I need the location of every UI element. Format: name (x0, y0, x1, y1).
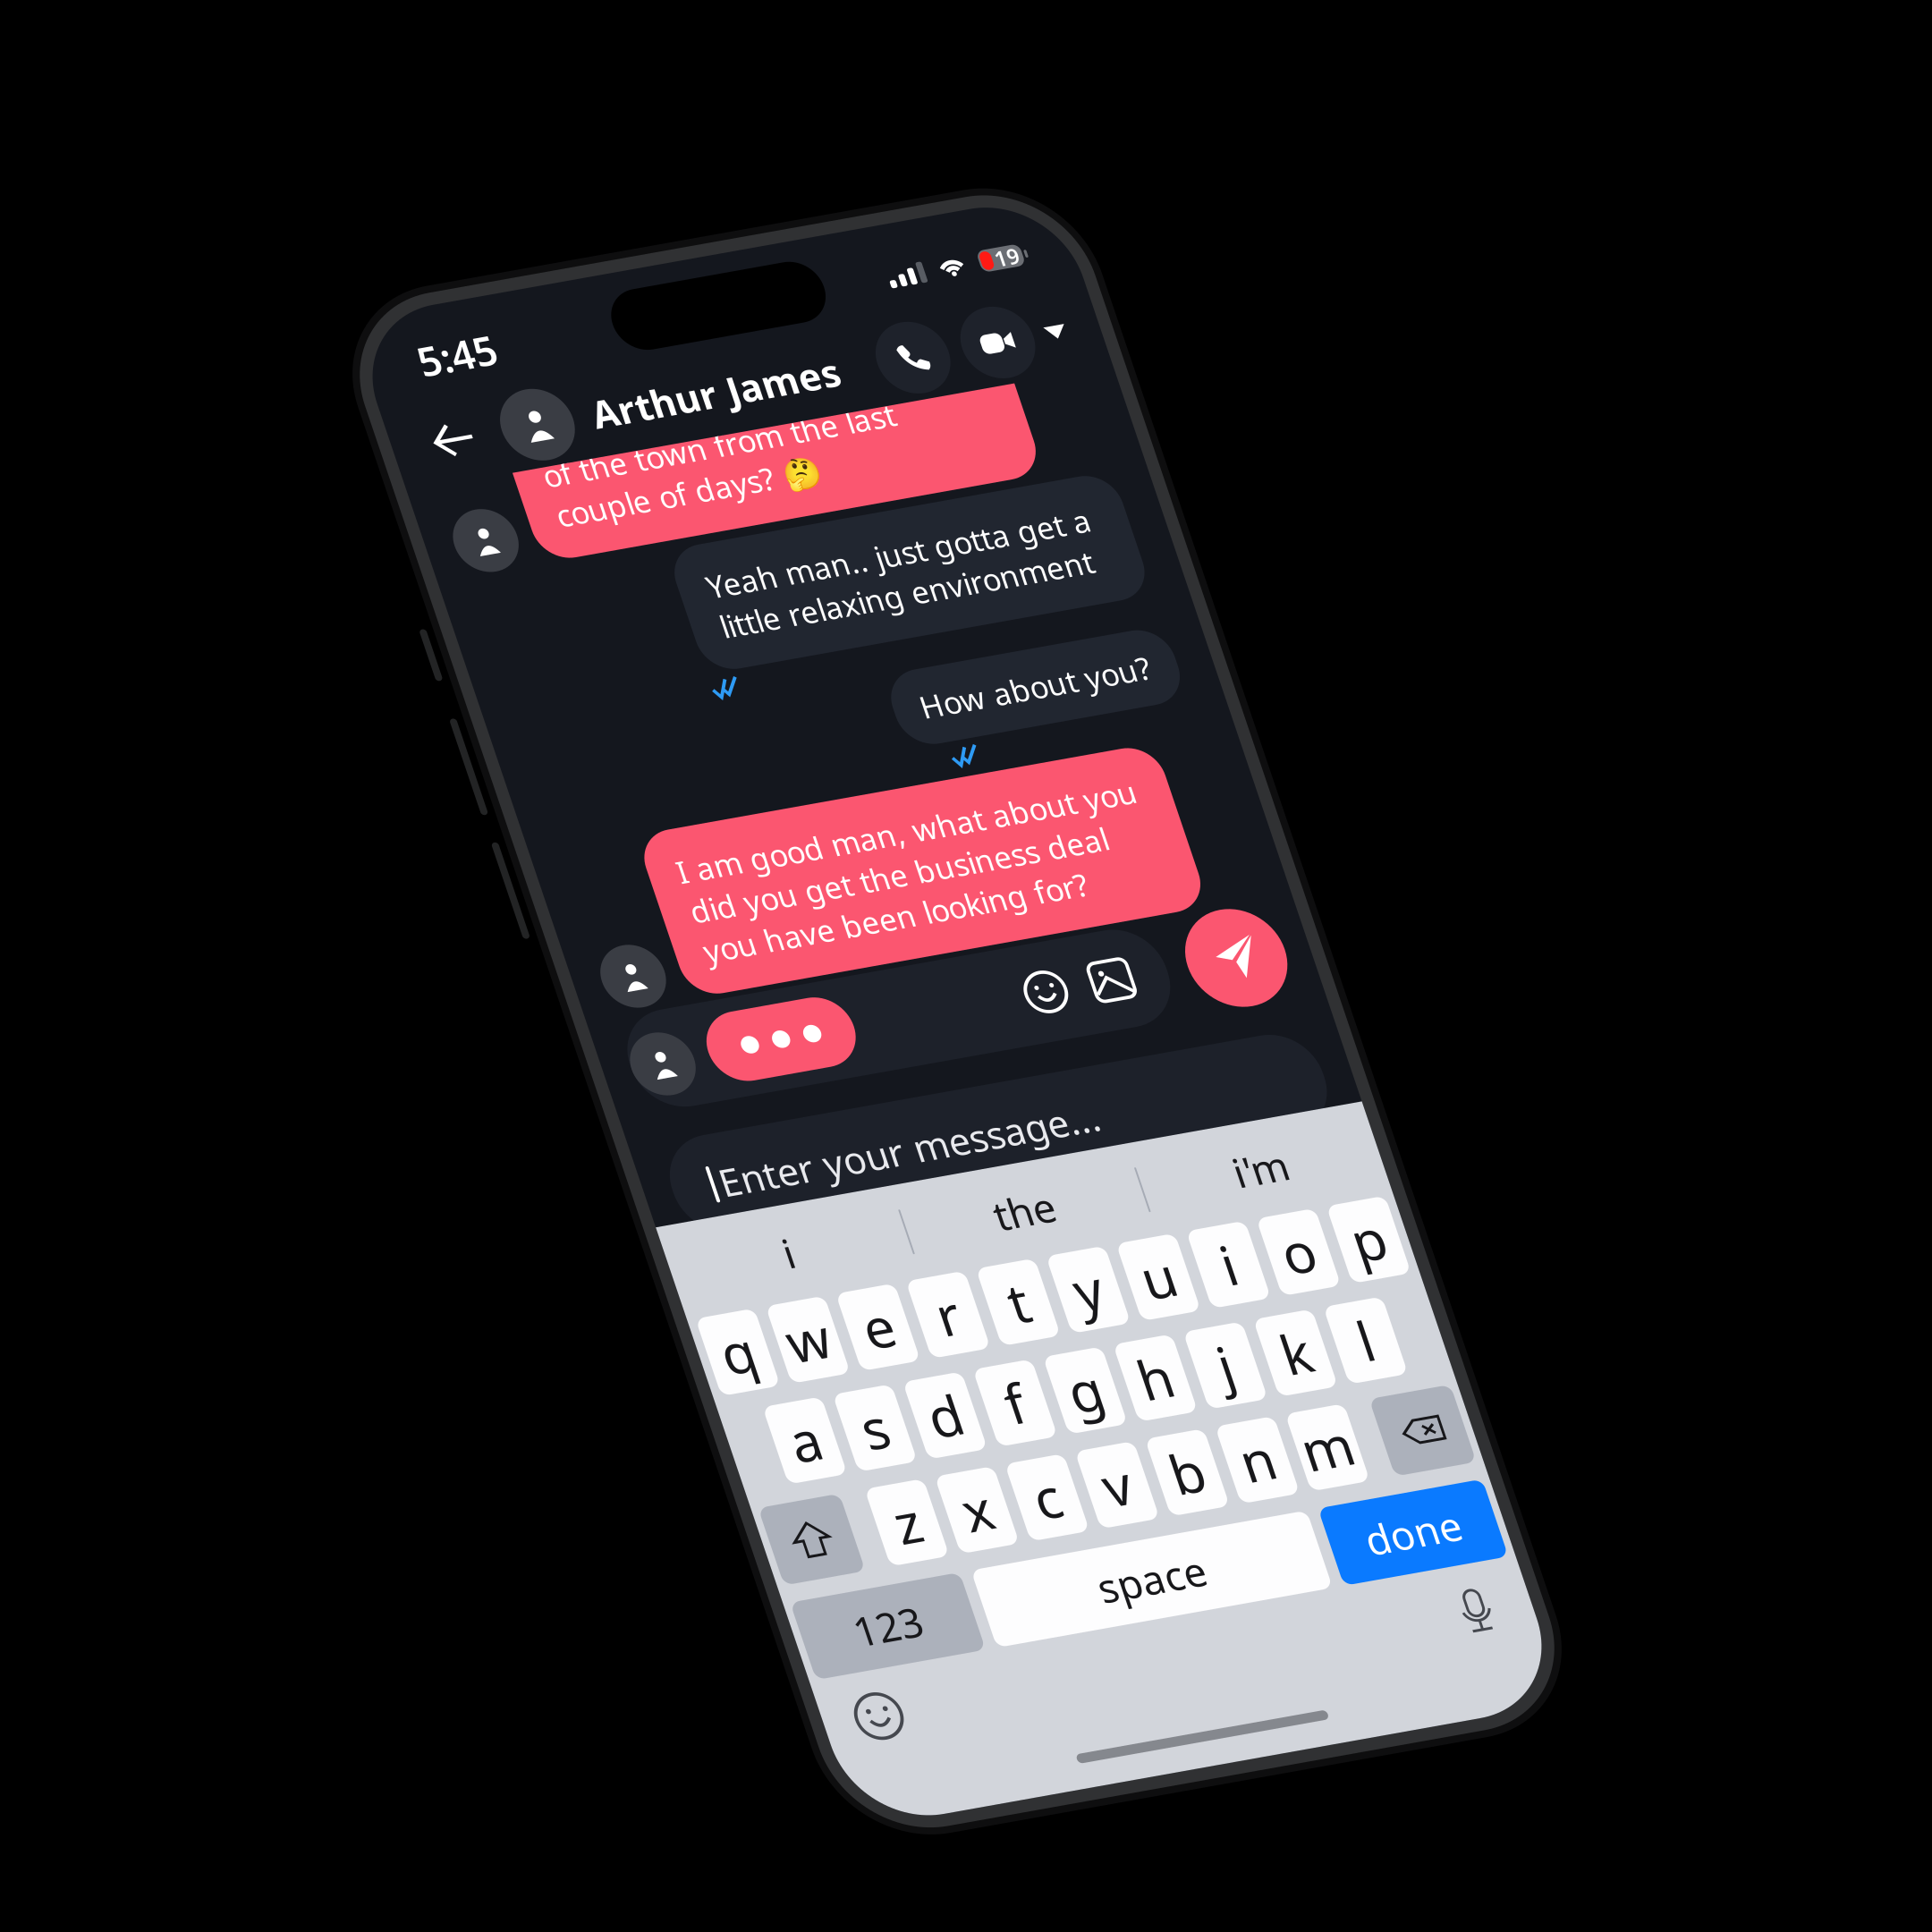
button[interactable]: Send (312, 376, 362, 426)
